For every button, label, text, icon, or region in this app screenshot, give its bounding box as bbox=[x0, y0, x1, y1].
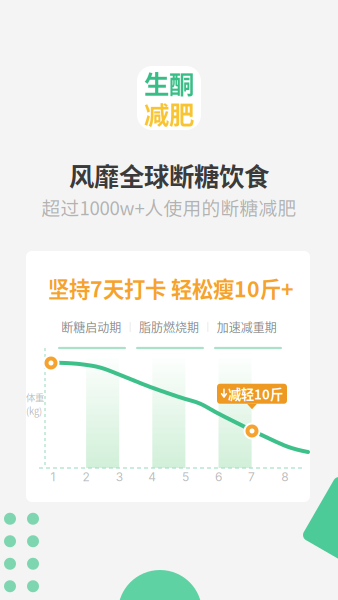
staticText: 风靡全球断糖饮食 bbox=[69, 157, 269, 193]
staticText: 体重 bbox=[26, 390, 44, 404]
staticText: 减肥 bbox=[144, 95, 194, 132]
staticText: 减轻10斤 bbox=[228, 384, 283, 403]
staticText: 脂肪燃烧期 bbox=[139, 318, 199, 336]
staticText: 加速减重期 bbox=[217, 318, 277, 336]
staticText: 坚持7天打卡 轻松瘦10斤+ bbox=[48, 273, 294, 303]
staticText: 6 bbox=[215, 470, 222, 484]
staticText: 4 bbox=[148, 470, 156, 484]
staticText: 2 bbox=[83, 470, 90, 484]
staticText: 7 bbox=[248, 470, 255, 484]
staticText: 断糖启动期 bbox=[61, 318, 121, 336]
staticText: 8 bbox=[281, 470, 288, 484]
staticText: 生酮 bbox=[144, 64, 194, 101]
staticText: 超过1000w+人使用的断糖减肥 bbox=[41, 193, 296, 220]
staticText: 5 bbox=[182, 470, 189, 484]
staticText: (kg) bbox=[26, 404, 42, 417]
staticText: 3 bbox=[116, 470, 123, 484]
staticText: 1 bbox=[50, 470, 55, 484]
